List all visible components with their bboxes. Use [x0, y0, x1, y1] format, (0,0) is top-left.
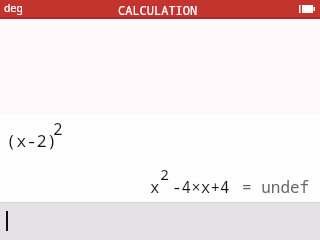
button[interactable]	[0, 0, 320, 17]
staticText: 2	[53, 118, 63, 140]
staticText: -4×x+4	[172, 176, 230, 198]
staticText: (x-2)	[6, 129, 57, 152]
staticText: deg	[4, 1, 23, 15]
staticText: CALCULATION	[118, 2, 198, 18]
staticText: 2	[160, 164, 170, 184]
staticText: x	[150, 176, 160, 198]
staticText: = undef	[242, 176, 310, 198]
button[interactable]	[0, 202, 320, 240]
button[interactable]	[0, 115, 320, 202]
